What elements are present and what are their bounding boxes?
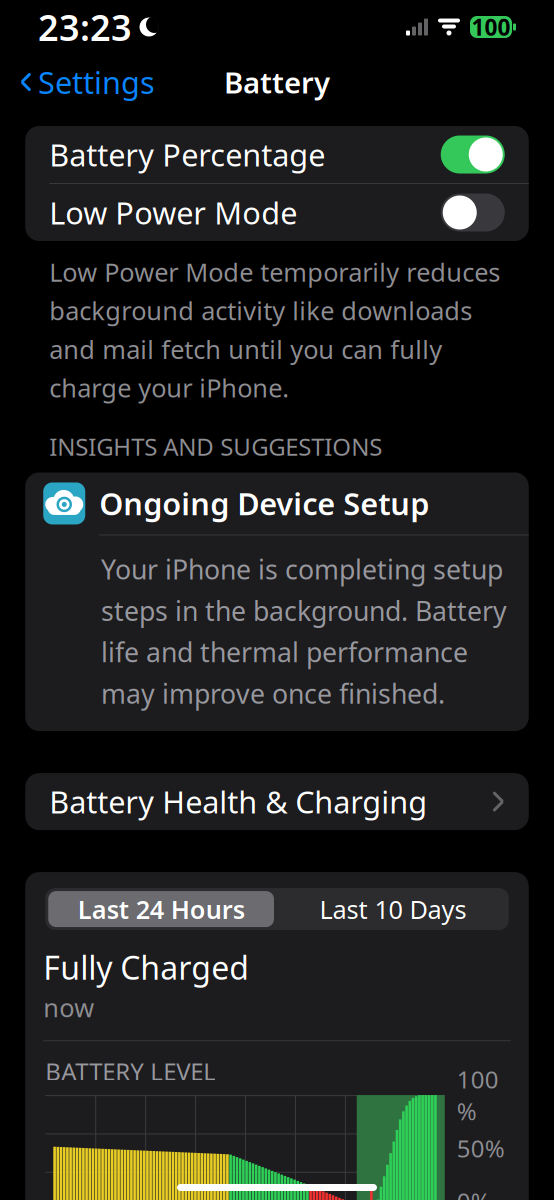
staticText: Low Power Mode temporarily reduces backg… bbox=[49, 255, 500, 405]
staticText: Last 10 Days bbox=[319, 892, 466, 926]
staticText: Settings bbox=[38, 62, 155, 102]
button[interactable]: Battery Health & Charging bbox=[0, 773, 554, 830]
button[interactable]: Last 24 Hours bbox=[45, 888, 277, 930]
staticText: 50% bbox=[457, 1132, 505, 1164]
staticText: 100 bbox=[471, 12, 510, 42]
staticText: Low Power Mode bbox=[49, 192, 297, 233]
staticText: Battery Percentage bbox=[49, 134, 325, 175]
staticText: Your iPhone is completing setup steps in… bbox=[101, 551, 507, 711]
button[interactable]: Settings bbox=[6, 54, 169, 110]
staticText: Battery bbox=[224, 62, 330, 101]
staticText: INSIGHTS AND SUGGESTIONS bbox=[49, 431, 382, 462]
staticText: Battery Health & Charging bbox=[49, 781, 427, 822]
button[interactable]: Last 10 Days bbox=[277, 888, 509, 930]
staticText: Fully Charged bbox=[43, 946, 249, 989]
button[interactable]: Battery Percentage bbox=[25, 126, 529, 183]
staticText: 23:23 bbox=[38, 3, 132, 51]
button[interactable]: Low Power Mode bbox=[25, 184, 529, 241]
staticText: Last 24 Hours bbox=[78, 892, 245, 926]
button[interactable]: Ongoing Device Setup bbox=[0, 472, 554, 731]
staticText: now bbox=[43, 991, 94, 1024]
staticText: 100% bbox=[457, 1063, 499, 1127]
staticText: Ongoing Device Setup bbox=[99, 483, 429, 524]
staticText: 0% bbox=[457, 1185, 491, 1200]
staticText: BATTERY LEVEL bbox=[45, 1055, 216, 1087]
